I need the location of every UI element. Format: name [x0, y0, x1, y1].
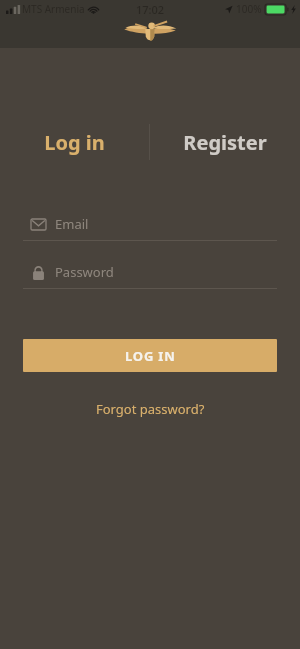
staticText: Password	[55, 263, 114, 281]
staticText: Register	[183, 129, 267, 156]
staticText: 17:02	[136, 2, 165, 17]
button[interactable]: LOG IN	[23, 339, 277, 372]
button[interactable]: Password	[23, 260, 277, 284]
button[interactable]: Email	[23, 212, 277, 236]
staticText: Log in	[44, 129, 105, 156]
staticText: MTS Armenia	[22, 2, 85, 16]
button[interactable]: Forgot password?	[84, 396, 217, 422]
staticText: LOG IN	[125, 347, 176, 365]
staticText: Email	[55, 215, 89, 233]
other: Email	[30, 216, 46, 232]
other: Password	[30, 264, 46, 280]
button[interactable]: Log in	[0, 122, 149, 162]
button[interactable]: Register	[150, 122, 300, 162]
staticText: 100%	[236, 2, 262, 16]
staticText: Forgot password?	[96, 400, 205, 418]
